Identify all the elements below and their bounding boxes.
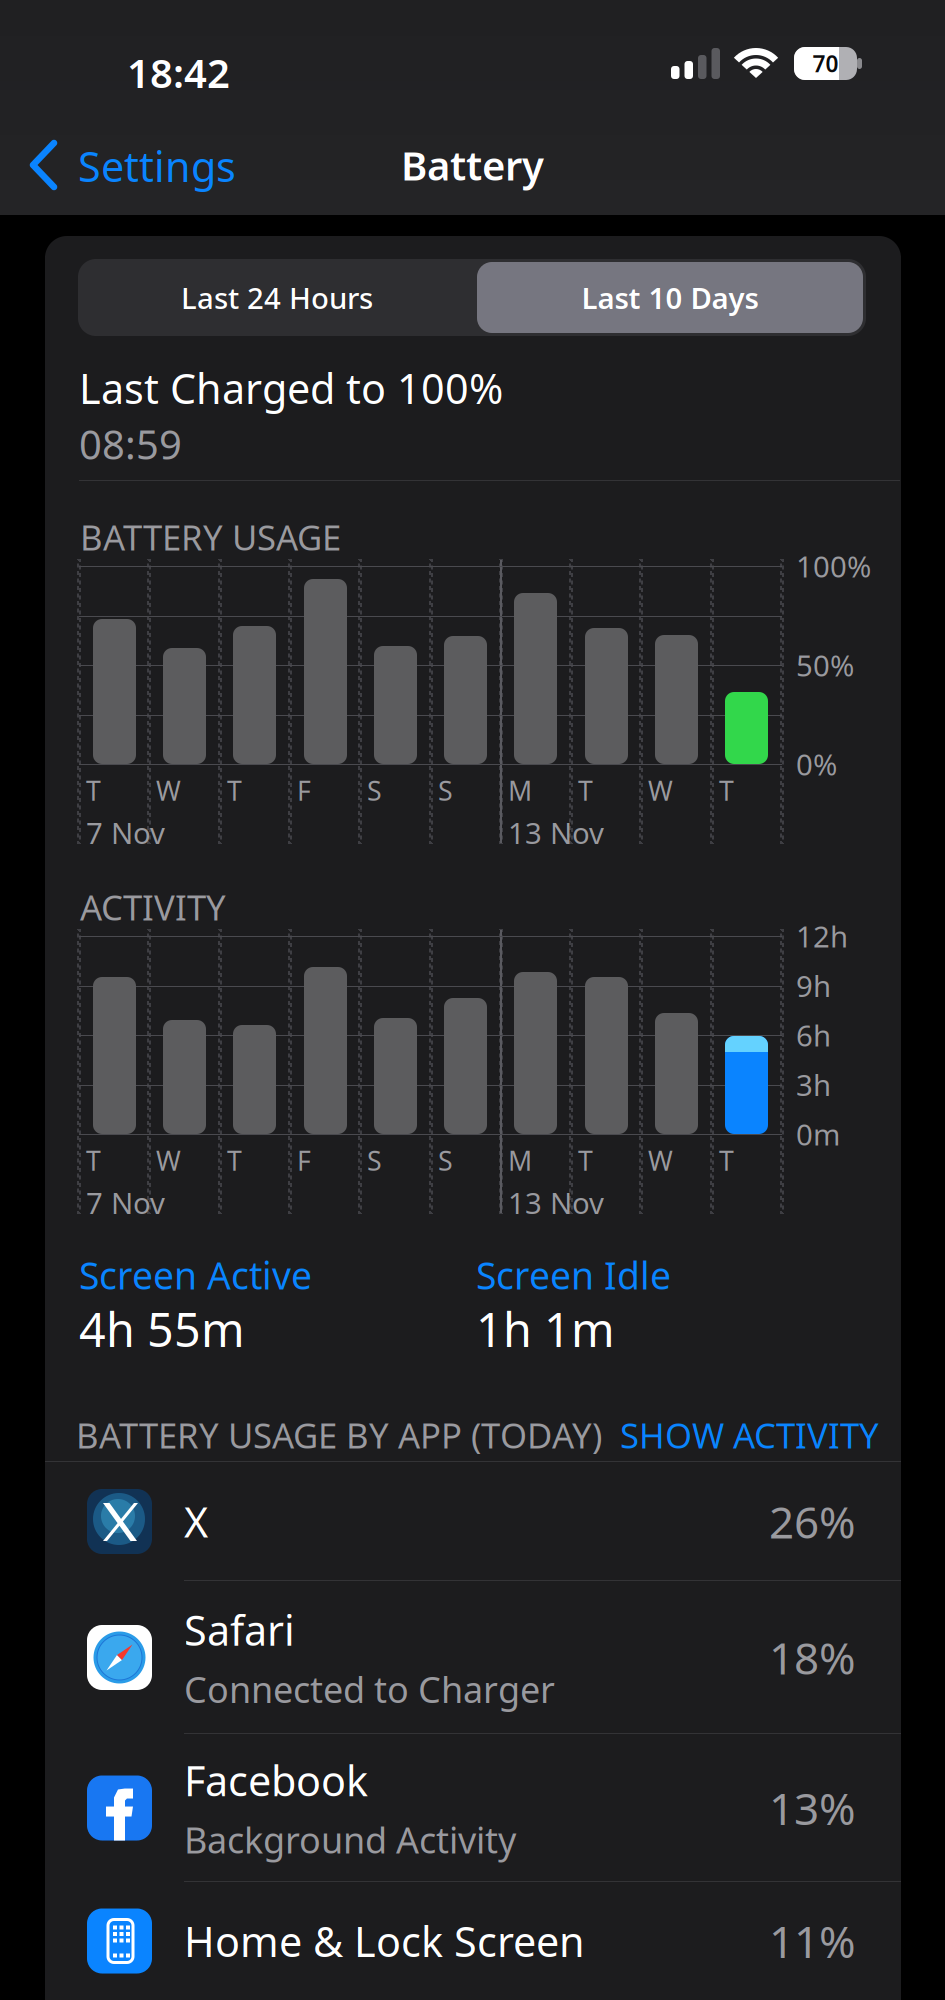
staticText: 1h 1m <box>476 1298 615 1360</box>
staticText: Last Charged to 100% <box>79 361 503 415</box>
staticText: W <box>648 1143 673 1178</box>
staticText: Home & Lock Screen <box>184 1914 585 1968</box>
staticText: M <box>508 1143 532 1178</box>
staticText: 13 Nov <box>508 1183 604 1222</box>
staticText: S <box>367 1143 382 1178</box>
staticText: T <box>578 773 593 808</box>
staticText: 18:42 <box>127 46 230 99</box>
button[interactable]: Safari <box>45 1581 901 1734</box>
staticText: BATTERY USAGE BY APP (TODAY) <box>76 1412 602 1458</box>
staticText: 3h <box>796 1065 831 1104</box>
staticText: M <box>508 773 532 808</box>
staticText: T <box>227 773 242 808</box>
button[interactable]: Facebook <box>45 1734 901 1882</box>
staticText: S <box>438 1143 453 1178</box>
staticText: Facebook <box>184 1753 368 1808</box>
staticText: BATTERY USAGE <box>80 514 341 560</box>
button[interactable]: X <box>45 1462 901 1581</box>
button[interactable]: Last 10 Days <box>477 262 863 333</box>
staticText: 9h <box>796 966 831 1005</box>
staticText: W <box>156 773 181 808</box>
staticText: Last 10 Days <box>581 278 758 317</box>
staticText: F <box>297 1143 311 1178</box>
staticText: 4h 55m <box>79 1298 245 1360</box>
staticText: S <box>438 773 453 808</box>
staticText: Connected to Charger <box>184 1665 555 1713</box>
button[interactable]: Last 24 Hours <box>81 262 473 333</box>
staticText: Battery <box>401 138 544 191</box>
staticText: 12h <box>796 916 848 955</box>
staticText: 50% <box>796 645 854 684</box>
staticText: Settings <box>78 139 236 193</box>
staticText: W <box>648 773 673 808</box>
button[interactable]: Home & Lock Screen <box>45 1882 901 2000</box>
staticText: T <box>719 1143 734 1178</box>
staticText: W <box>156 1143 181 1178</box>
staticText: SHOW ACTIVITY <box>620 1412 879 1458</box>
staticText: T <box>86 1143 101 1178</box>
staticText: Last 24 Hours <box>181 278 373 317</box>
staticText: ACTIVITY <box>80 884 226 930</box>
staticText: 7 Nov <box>86 1183 165 1222</box>
staticText: F <box>297 773 311 808</box>
staticText: X <box>184 1494 208 1549</box>
staticText: T <box>578 1143 593 1178</box>
staticText: Screen Active <box>79 1250 312 1300</box>
staticText: 100% <box>796 546 871 585</box>
staticText: 26% <box>769 1492 856 1551</box>
staticText: 18% <box>769 1628 856 1687</box>
staticText: 0m <box>796 1114 840 1153</box>
staticText: 0% <box>796 744 837 783</box>
staticText: 7 Nov <box>86 813 165 852</box>
button[interactable]: Settings <box>24 134 264 196</box>
staticText: T <box>719 773 734 808</box>
staticText: 13 Nov <box>508 813 604 852</box>
staticText: 13% <box>769 1779 856 1837</box>
staticText: Background Activity <box>184 1815 516 1863</box>
staticText: S <box>367 773 382 808</box>
staticText: Screen Idle <box>476 1250 671 1300</box>
staticText: 11% <box>769 1912 856 1970</box>
button[interactable]: SHOW ACTIVITY <box>620 1412 879 1458</box>
staticText: T <box>86 773 101 808</box>
staticText: 70 <box>812 48 838 78</box>
staticText: 08:59 <box>79 417 182 470</box>
staticText: 6h <box>796 1015 831 1054</box>
staticText: Safari <box>184 1602 295 1657</box>
staticText: T <box>227 1143 242 1178</box>
